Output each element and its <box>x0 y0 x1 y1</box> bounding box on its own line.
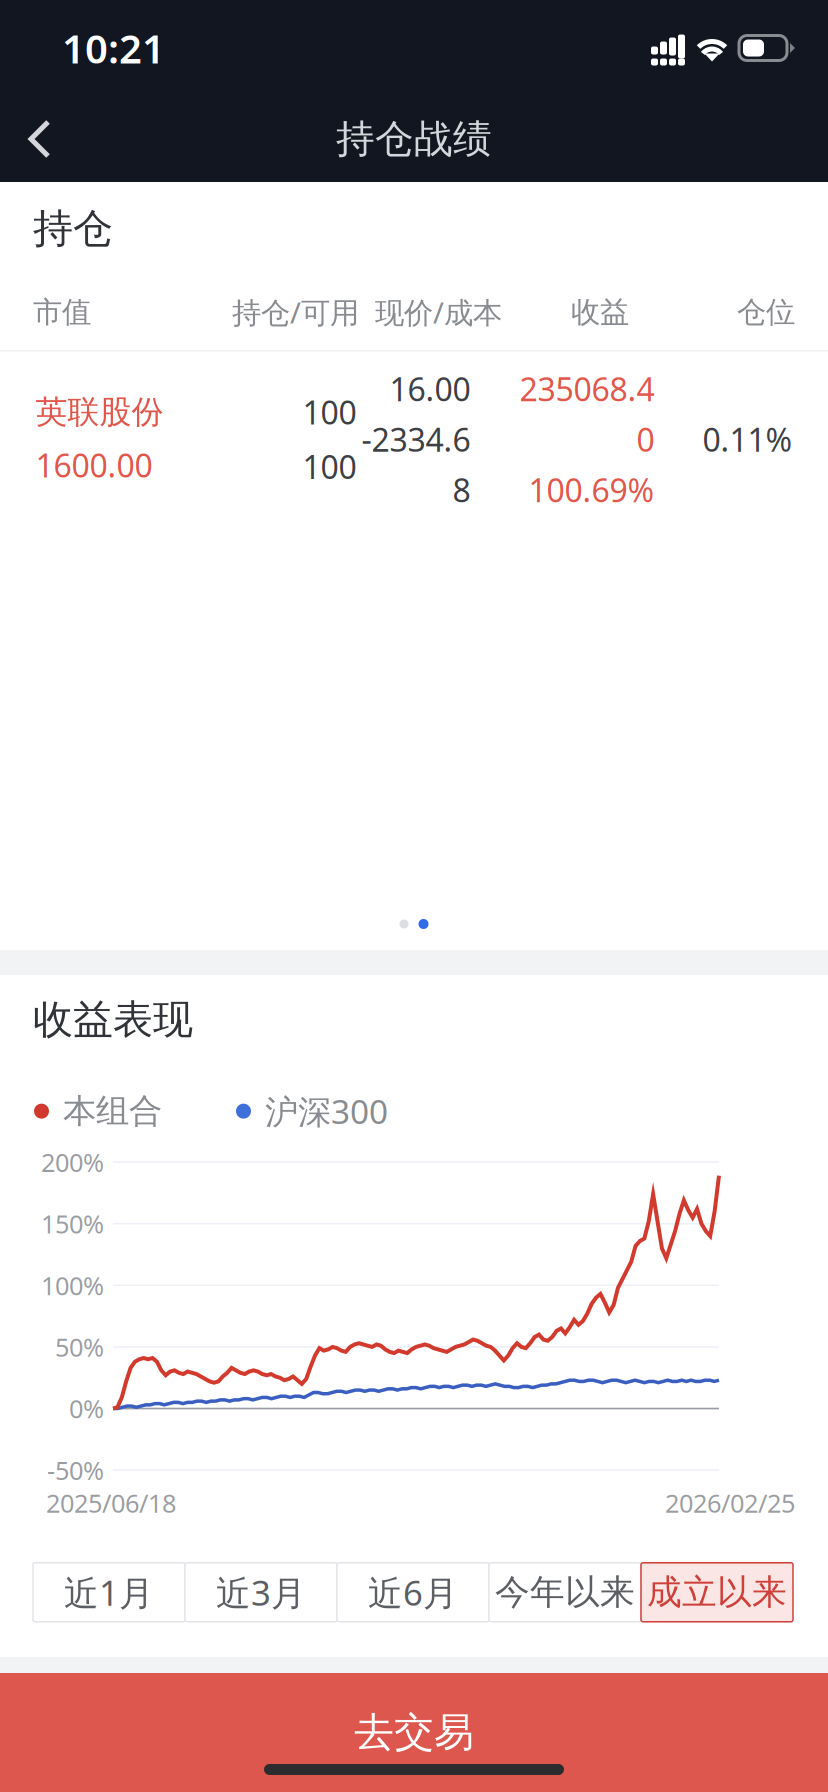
staticText: 近3月 <box>216 1569 306 1615</box>
staticText: 持仓 <box>33 204 113 253</box>
staticText: 本组合 <box>63 1091 162 1132</box>
staticText: 100 <box>302 391 356 433</box>
staticText: 2025/06/18 <box>46 1486 176 1520</box>
staticText: 10:21 <box>62 21 165 74</box>
staticText: 150% <box>41 1207 104 1240</box>
staticText: 近6月 <box>368 1569 458 1615</box>
staticText: 英联股份 <box>35 392 163 432</box>
staticText: 16.00 <box>389 368 470 410</box>
staticText: 持仓战绩 <box>336 115 492 163</box>
staticText: 2026/02/25 <box>665 1486 795 1520</box>
staticText: 1600.00 <box>35 444 152 486</box>
button[interactable]: 成立以来 <box>641 1563 793 1622</box>
staticText: 50% <box>55 1330 104 1364</box>
staticText: -2334.6 <box>361 418 470 461</box>
staticText: 沪深300 <box>265 1089 388 1133</box>
staticText: 去交易 <box>354 1708 474 1757</box>
staticText: 235068.4 <box>519 368 654 410</box>
button[interactable]: 近6月 <box>337 1563 489 1622</box>
staticText: 持仓/可用 <box>232 293 359 332</box>
staticText: 200% <box>41 1145 104 1179</box>
staticText: 100% <box>41 1268 104 1302</box>
staticText: 0% <box>69 1392 104 1425</box>
staticText: 100 <box>302 445 356 488</box>
staticText: 收益表现 <box>33 995 193 1044</box>
button[interactable]: 近3月 <box>185 1563 337 1622</box>
button[interactable]: 去交易 <box>0 1673 828 1792</box>
staticText: 市值 <box>33 294 91 330</box>
button[interactable]: 今年以来 <box>489 1563 641 1622</box>
button[interactable]: 返回 <box>0 96 86 182</box>
staticText: 成立以来 <box>647 1571 787 1614</box>
button[interactable]: 近1月 <box>33 1563 185 1622</box>
staticText: 100.69% <box>528 469 654 511</box>
staticText: 0.11% <box>702 418 792 461</box>
staticText: -50% <box>47 1453 104 1487</box>
staticText: 近1月 <box>64 1569 154 1615</box>
staticText: 收益 <box>571 294 629 330</box>
staticText: 8 <box>452 469 470 511</box>
staticText: 仓位 <box>737 294 795 330</box>
staticText: 0 <box>636 418 654 461</box>
staticText: 今年以来 <box>495 1571 635 1614</box>
staticText: 现价/成本 <box>375 293 502 332</box>
